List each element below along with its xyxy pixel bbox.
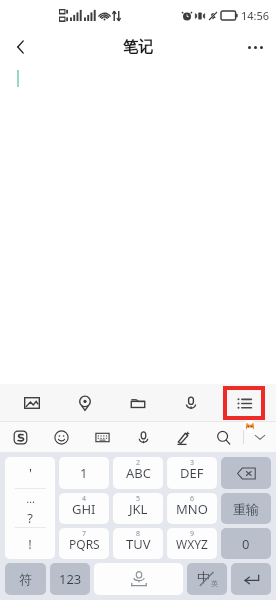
- button[interactable]: Voice: [123, 422, 163, 452]
- staticText: 9: [190, 529, 195, 539]
- button[interactable]: 1: [59, 457, 109, 489]
- staticText: 0: [242, 535, 250, 553]
- button[interactable]: ?: [5, 508, 55, 527]
- staticText: TUV: [126, 535, 151, 553]
- button[interactable]: PQRS: [59, 528, 109, 559]
- button[interactable]: DEF: [167, 457, 217, 489]
- staticText: 中: [197, 569, 210, 585]
- staticText: 1: [80, 464, 88, 482]
- button[interactable]: Space: [94, 563, 183, 595]
- button[interactable]: WXYZ: [167, 528, 217, 559]
- button[interactable]: 123: [50, 563, 90, 595]
- button[interactable]: Sogou input: [0, 422, 41, 452]
- button[interactable]: Search: [203, 422, 243, 452]
- button[interactable]: Checklist: [225, 388, 263, 418]
- button[interactable]: 0: [221, 528, 271, 559]
- staticText: PQRS: [69, 536, 100, 552]
- button[interactable]: Insert image: [6, 384, 58, 421]
- button[interactable]: Backspace: [221, 457, 271, 489]
- button[interactable]: Attach file: [111, 384, 164, 421]
- button[interactable]: ': [5, 457, 55, 488]
- button[interactable]: GHI: [59, 493, 109, 524]
- button[interactable]: More options: [238, 30, 272, 64]
- button[interactable]: Hide keyboard: [244, 422, 276, 452]
- staticText: 8: [136, 529, 141, 539]
- staticText: JKL: [129, 500, 148, 518]
- button[interactable]: Back: [4, 30, 38, 64]
- button[interactable]: 符: [5, 563, 46, 595]
- staticText: ABC: [126, 464, 151, 482]
- staticText: 2: [136, 458, 141, 468]
- button[interactable]: TUV: [113, 528, 163, 559]
- staticText: !: [28, 535, 32, 553]
- staticText: 7: [82, 529, 87, 539]
- button[interactable]: 重输: [221, 493, 271, 524]
- button[interactable]: Enter: [231, 563, 271, 595]
- staticText: 符: [19, 571, 32, 587]
- staticText: GHI: [72, 500, 96, 518]
- button[interactable]: Keyboard layout: [82, 422, 123, 452]
- button[interactable]: Add location: [58, 384, 111, 421]
- staticText: 123: [59, 570, 82, 588]
- button[interactable]: Emoji: [41, 422, 82, 452]
- button[interactable]: MNO: [167, 493, 217, 524]
- button[interactable]: JKL: [113, 493, 163, 524]
- staticText: 5: [136, 494, 141, 504]
- button[interactable]: ABC: [113, 457, 163, 489]
- staticText: DEF: [180, 464, 204, 482]
- staticText: MNO: [176, 500, 208, 518]
- staticText: WXYZ: [176, 536, 208, 552]
- staticText: 14:56: [241, 8, 270, 23]
- staticText: 3: [190, 458, 195, 468]
- staticText: 重输: [233, 501, 259, 517]
- button[interactable]: Sticker: [243, 420, 256, 433]
- staticText: 6: [190, 494, 195, 504]
- staticText: ?: [27, 509, 33, 527]
- staticText: 英: [211, 579, 218, 588]
- button[interactable]: !: [5, 528, 55, 559]
- button[interactable]: …: [5, 489, 55, 508]
- staticText: ': [29, 464, 32, 482]
- button[interactable]: Handwriting: [163, 422, 203, 452]
- staticText: 笔记: [123, 38, 153, 57]
- staticText: …: [26, 491, 35, 506]
- staticText: 4: [82, 494, 87, 504]
- button[interactable]: Voice input: [164, 384, 217, 421]
- button[interactable]: Switch Chinese English: [187, 563, 227, 595]
